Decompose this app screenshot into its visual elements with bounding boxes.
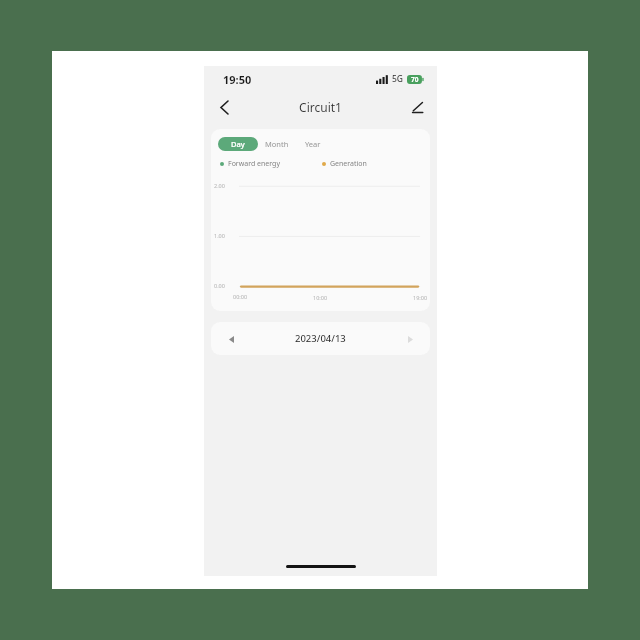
button[interactable]: Back: [210, 93, 238, 121]
button[interactable]: Previous day: [221, 329, 241, 349]
staticText: Year: [305, 139, 321, 149]
staticText: 0.00: [214, 282, 225, 289]
button[interactable]: Next day: [400, 329, 420, 349]
staticText: Generation: [330, 159, 367, 169]
staticText: Day: [231, 139, 245, 149]
staticText: Forward energy: [228, 159, 280, 169]
staticText: 2023/04/13: [295, 332, 346, 345]
button[interactable]: Month: [258, 137, 296, 151]
button[interactable]: Day: [218, 137, 258, 151]
staticText: 10:00: [313, 294, 328, 301]
staticText: Month: [265, 139, 289, 149]
button[interactable]: Year: [296, 137, 330, 151]
staticText: Circuit1: [299, 99, 342, 115]
staticText: 70: [411, 75, 419, 84]
staticText: 00:00: [233, 293, 248, 300]
staticText: 1.00: [214, 232, 225, 239]
staticText: 5G: [392, 73, 404, 85]
staticText: 19:00: [413, 294, 428, 301]
staticText: 19:50: [223, 72, 252, 87]
button[interactable]: Edit: [404, 94, 430, 120]
staticText: 2.00: [214, 182, 225, 189]
